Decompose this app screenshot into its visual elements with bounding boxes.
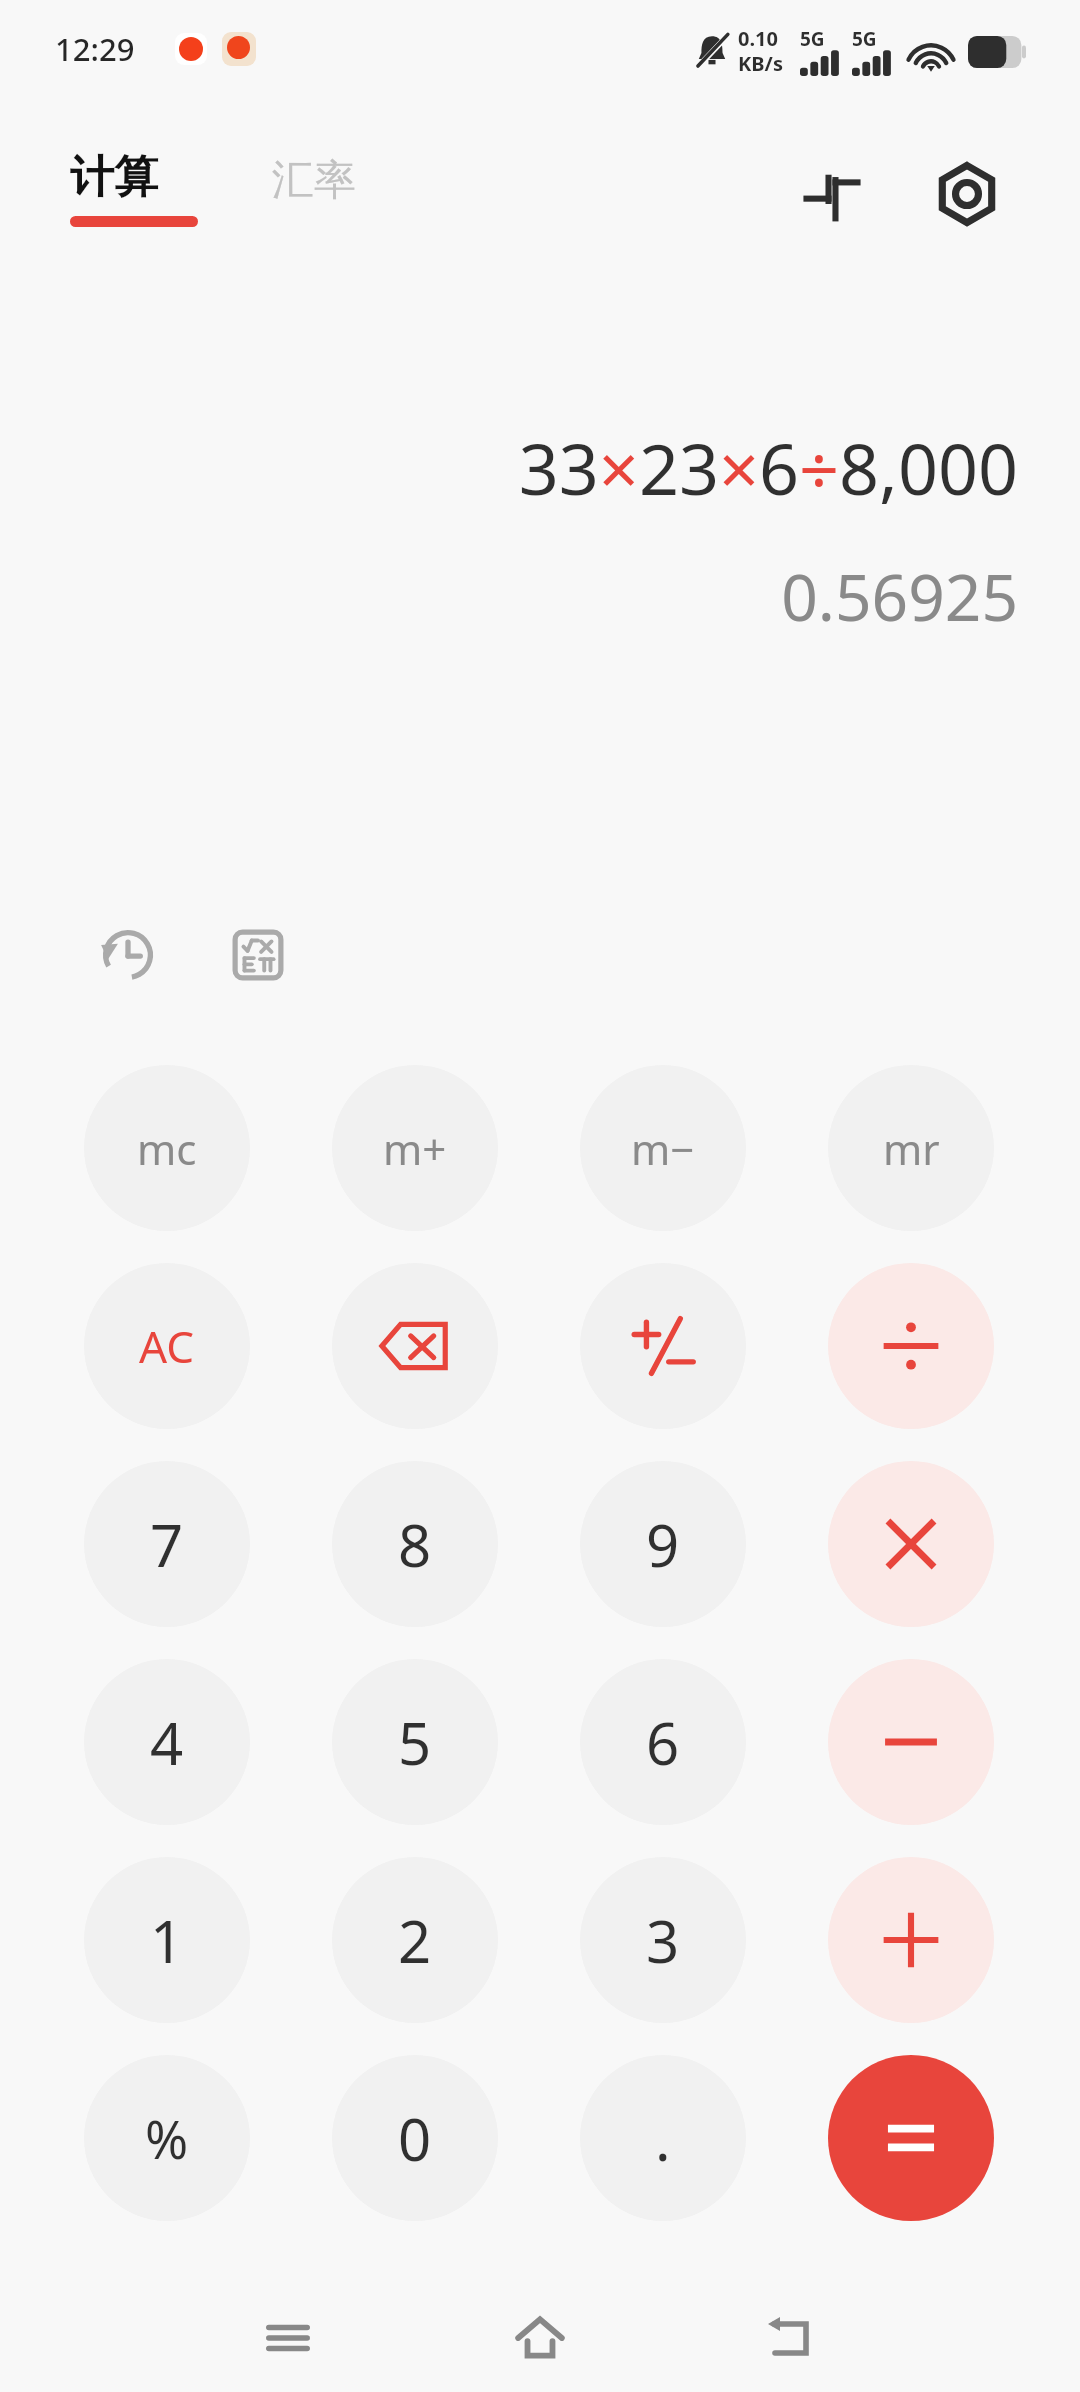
button[interactable]: 汇率 [268, 154, 360, 207]
button[interactable]: Collapse [790, 152, 874, 236]
button[interactable]: 3 [580, 1857, 746, 2023]
staticText: 8 [398, 1505, 432, 1584]
button[interactable]: Settings [925, 152, 1009, 236]
staticText: 2 [398, 1901, 432, 1980]
button[interactable]: 9 [580, 1461, 746, 1627]
button[interactable]: Minus [828, 1659, 994, 1825]
button[interactable]: m+ [332, 1065, 498, 1231]
button[interactable]: Divide [828, 1263, 994, 1429]
button[interactable]: Multiply [828, 1461, 994, 1627]
staticText: 12:29 [55, 28, 135, 70]
staticText: KB/s [738, 50, 783, 77]
staticText: mc [137, 1120, 197, 1177]
button[interactable]: 5 [332, 1659, 498, 1825]
staticText: 0.56925 [0, 553, 1018, 640]
button[interactable]: m− [580, 1065, 746, 1231]
button[interactable]: 0 [332, 2055, 498, 2221]
staticText: mr [883, 1120, 940, 1177]
staticText: 4 [150, 1703, 184, 1782]
button[interactable]: 1 [84, 1857, 250, 2023]
button[interactable]: 4 [84, 1659, 250, 1825]
staticText: 计算 [70, 150, 158, 205]
button[interactable]: Scientific [208, 905, 308, 1005]
staticText: % [145, 2103, 189, 2174]
button[interactable]: 计算 [68, 150, 200, 227]
button[interactable]: 7 [84, 1461, 250, 1627]
button[interactable]: Equals [828, 2055, 994, 2221]
button[interactable]: Plus [828, 1857, 994, 2023]
button[interactable]: Plus minus [580, 1263, 746, 1429]
button[interactable]: mr [828, 1065, 994, 1231]
button[interactable]: AC [84, 1263, 250, 1429]
staticText: 5G [800, 26, 825, 52]
staticText: . [655, 2099, 671, 2178]
staticText: 5 [398, 1703, 432, 1782]
button[interactable]: 8 [332, 1461, 498, 1627]
button[interactable]: mc [84, 1065, 250, 1231]
button[interactable]: . [580, 2055, 746, 2221]
button[interactable]: History [78, 905, 178, 1005]
staticText: 0.10 [738, 25, 778, 52]
staticText: m− [631, 1120, 695, 1177]
button[interactable]: Backspace [332, 1263, 498, 1429]
button[interactable]: Back [744, 2290, 840, 2386]
staticText: 0 [398, 2099, 432, 2178]
staticText: 汇率 [272, 154, 356, 207]
button[interactable]: Recent apps [240, 2290, 336, 2386]
staticText: 6 [646, 1703, 680, 1782]
button[interactable]: 2 [332, 1857, 498, 2023]
staticText: m+ [383, 1120, 447, 1177]
button[interactable]: % [84, 2055, 250, 2221]
staticText: AC [139, 1316, 195, 1376]
staticText: 7 [150, 1505, 184, 1584]
button[interactable]: 6 [580, 1659, 746, 1825]
button[interactable]: Home [492, 2290, 588, 2386]
staticText: 3 [646, 1901, 680, 1980]
staticText: 33×23×6÷8,000 [0, 420, 1018, 515]
staticText: 1 [150, 1901, 184, 1980]
staticText: 5G [852, 26, 877, 52]
staticText: 9 [646, 1505, 680, 1584]
